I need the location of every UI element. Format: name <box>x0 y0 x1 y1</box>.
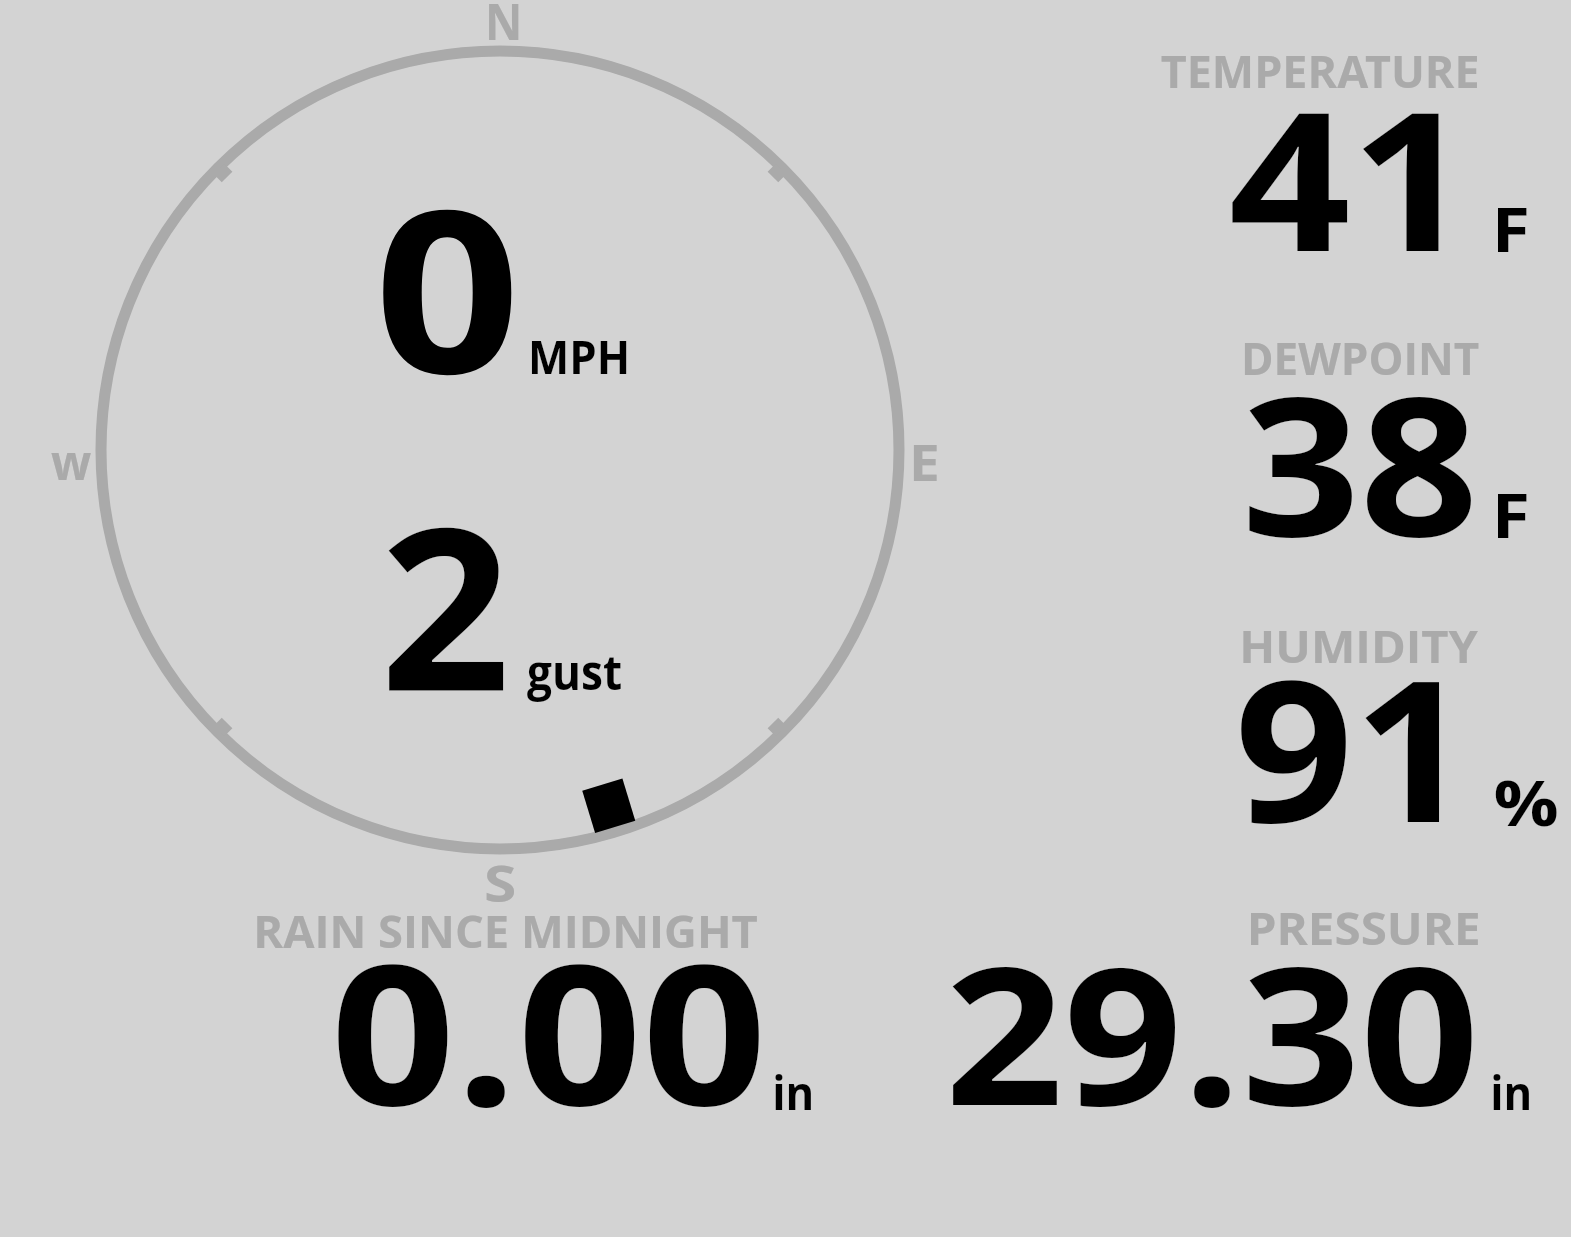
staticText: F <box>1492 474 1530 556</box>
staticText: MPH <box>528 325 631 388</box>
staticText: gust <box>527 639 623 704</box>
staticText: N <box>485 0 523 55</box>
staticText: in <box>1490 1061 1533 1124</box>
staticText: in <box>772 1061 815 1124</box>
staticText: 0.00 <box>330 898 767 1162</box>
staticText: 41 <box>1229 46 1473 307</box>
staticText: TEMPERATURE <box>1161 41 1480 101</box>
staticText: HUMIDITY <box>1239 616 1479 676</box>
staticText: PRESSURE <box>1247 898 1481 958</box>
staticText: RAIN SINCE MIDNIGHT <box>253 901 758 961</box>
staticText: E <box>909 428 941 496</box>
staticText: DEWPOINT <box>1241 328 1480 388</box>
staticText: 38 <box>1241 331 1479 592</box>
staticText: 91 <box>1235 613 1472 880</box>
button[interactable]: Pressure 29.30 inches <box>900 888 1560 1123</box>
button[interactable]: Humidity 91 percent <box>1120 605 1560 845</box>
staticText: 0 <box>374 133 521 439</box>
button[interactable]: Dewpoint 38 degrees Fahrenheit <box>1120 318 1560 558</box>
staticText: 2 <box>380 451 511 756</box>
button[interactable]: Temperature 41 degrees Fahrenheit <box>1120 30 1560 270</box>
staticText: S <box>484 847 517 916</box>
staticText: w <box>51 427 91 495</box>
staticText: % <box>1493 759 1559 845</box>
staticText: 29.30 <box>945 902 1479 1161</box>
staticText: F <box>1492 188 1530 270</box>
button[interactable]: Wind direction dial, 0 miles per hour <box>90 40 910 860</box>
button[interactable]: Rain since midnight 0.00 inches <box>240 905 840 1123</box>
